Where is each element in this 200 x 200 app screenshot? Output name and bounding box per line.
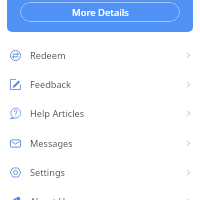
button[interactable]: Messages [0,128,200,158]
staticText: Messages [30,137,73,150]
button[interactable]: Help Articles [0,99,200,128]
button[interactable]: Feedback [0,70,200,99]
staticText: More Details [72,6,129,19]
staticText: Settings [30,166,65,179]
staticText: Feedback [30,78,71,91]
button[interactable]: Settings [0,158,200,187]
staticText: Redeem [30,49,66,62]
button[interactable]: About Us [0,187,200,200]
button[interactable]: Redeem [0,40,200,70]
staticText: About Us [30,195,70,200]
staticText: Help Articles [30,107,85,120]
button[interactable]: More Details [20,2,180,22]
